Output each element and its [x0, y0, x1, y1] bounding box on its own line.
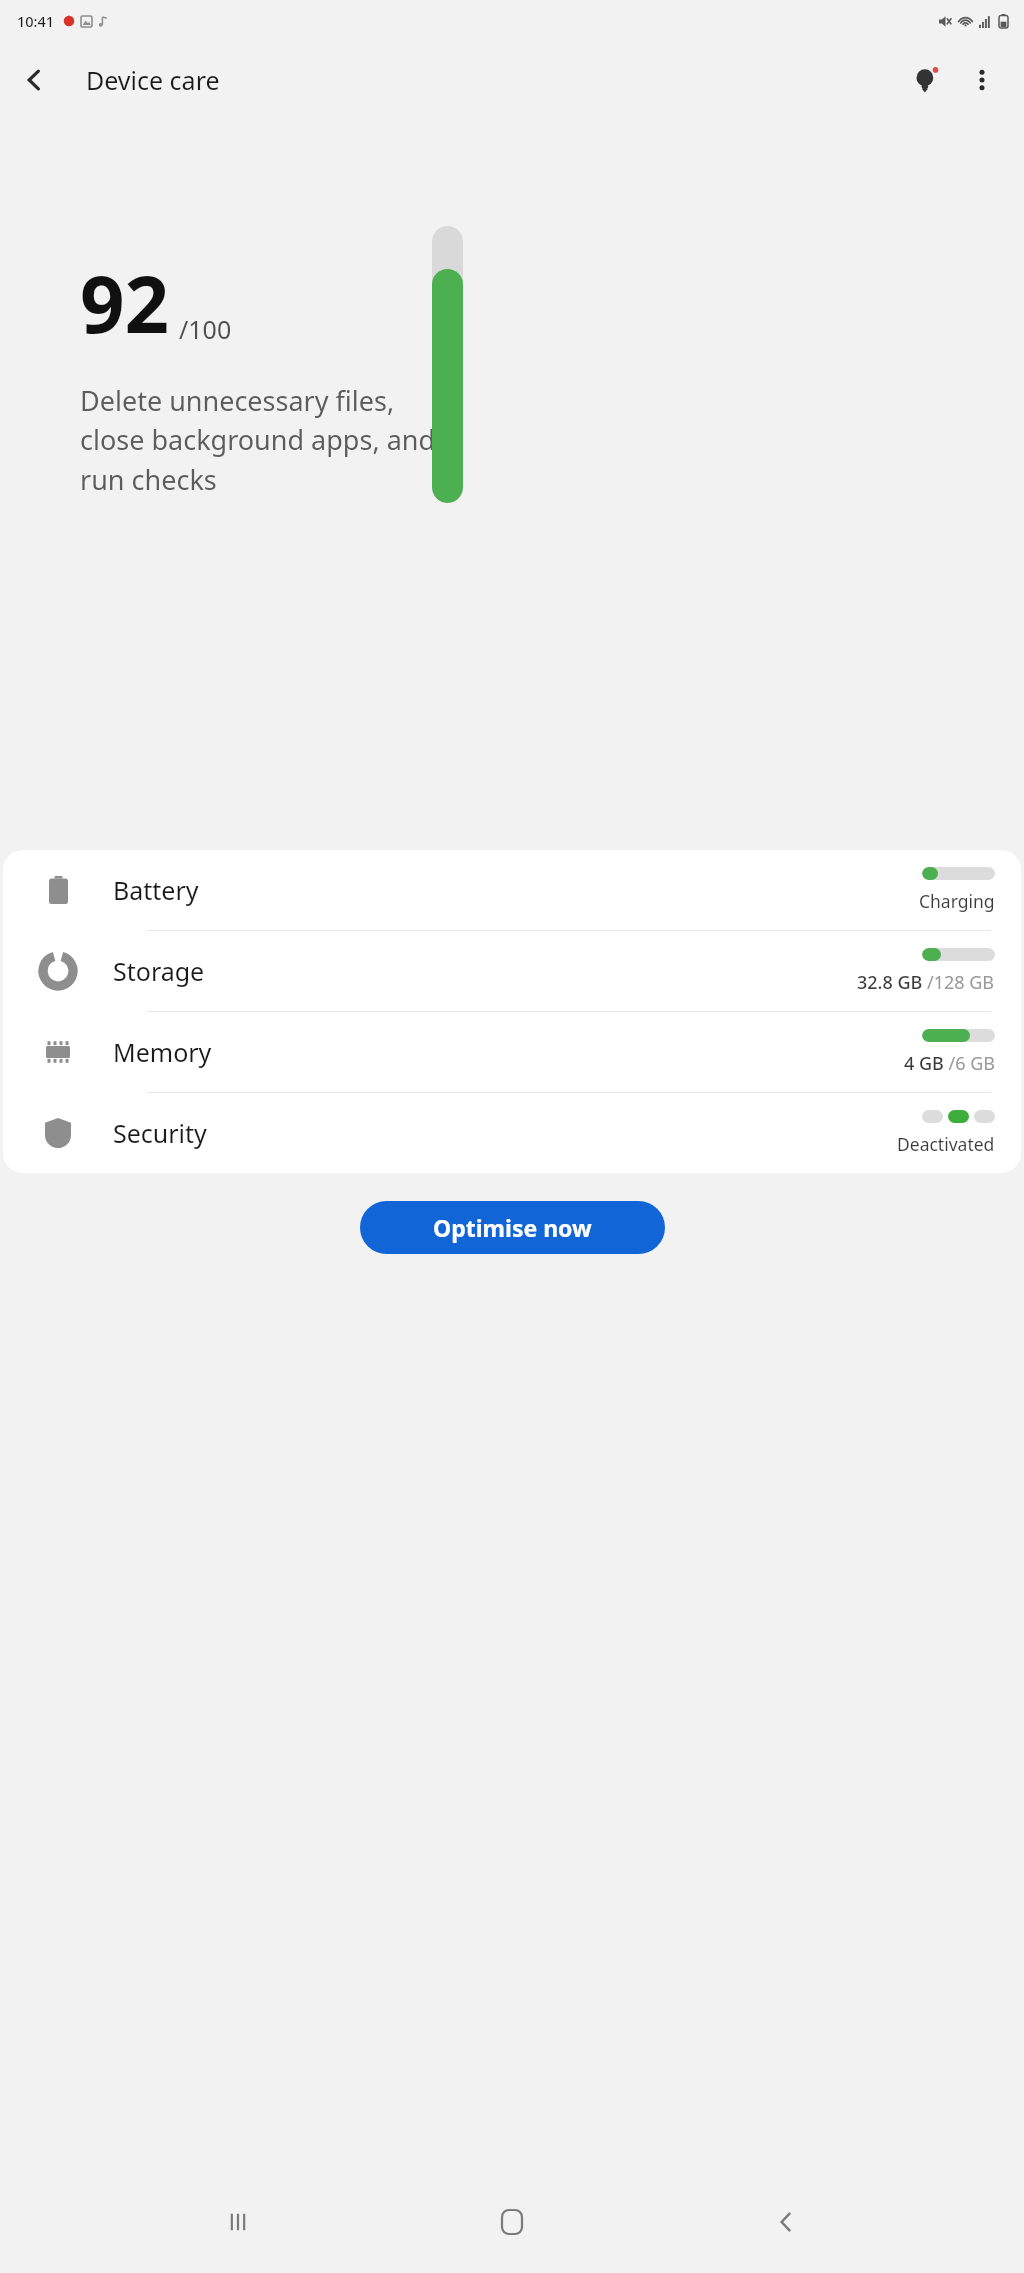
- button[interactable]: Optimise now: [360, 1201, 665, 1254]
- button[interactable]: Storage: [3, 931, 1021, 1011]
- button[interactable]: Tips: [898, 52, 954, 108]
- staticText: Deactivated: [897, 1132, 995, 1156]
- staticText: 10:41: [17, 11, 55, 31]
- staticText: Device care: [86, 63, 220, 97]
- button[interactable]: Security: [3, 1093, 1021, 1173]
- button[interactable]: More options: [954, 52, 1010, 108]
- staticText: Memory: [113, 1035, 212, 1069]
- staticText: 32.8 GB /128 GB: [857, 970, 995, 995]
- button[interactable]: Back: [6, 52, 62, 108]
- button[interactable]: Memory: [3, 1012, 1021, 1092]
- staticText: Battery: [113, 873, 199, 907]
- staticText: Charging: [919, 889, 995, 913]
- staticText: Security: [113, 1116, 207, 1150]
- staticText: 4 GB /6 GB: [904, 1051, 995, 1076]
- staticText: 92: [80, 250, 170, 356]
- staticText: Delete unnecessary files, close backgrou…: [80, 382, 436, 498]
- button[interactable]: Recents: [202, 2186, 274, 2258]
- button[interactable]: Battery: [3, 850, 1021, 930]
- staticText: Optimise now: [433, 1212, 592, 1243]
- staticText: Storage: [113, 954, 205, 988]
- staticText: /100: [179, 312, 232, 346]
- button[interactable]: Back: [750, 2186, 822, 2258]
- button[interactable]: Home: [476, 2186, 548, 2258]
